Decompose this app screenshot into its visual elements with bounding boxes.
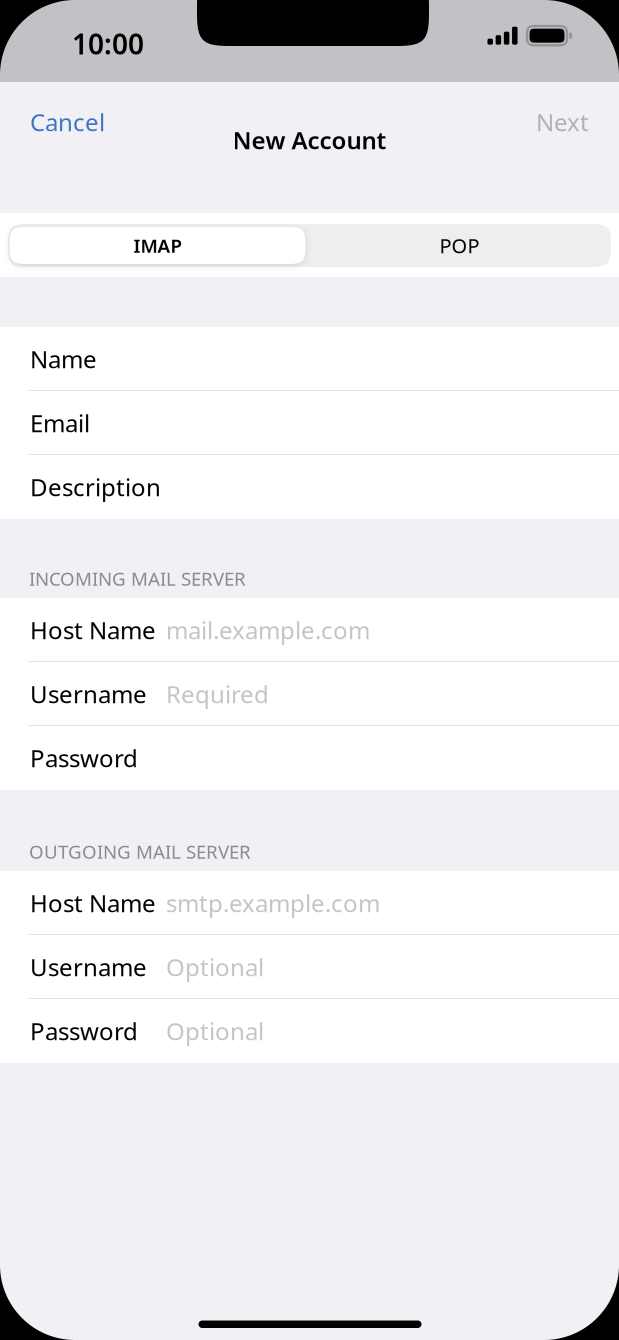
- staticText: Optional: [166, 951, 264, 983]
- button[interactable]: Host Name: [0, 871, 619, 935]
- staticText: Description: [30, 471, 161, 503]
- staticText: Host Name: [30, 887, 156, 919]
- button[interactable]: Email: [0, 391, 619, 455]
- staticText: POP: [439, 232, 479, 259]
- staticText: Name: [30, 343, 97, 375]
- button[interactable]: Password: [0, 726, 619, 790]
- button[interactable]: IMAP: [0, 213, 296, 256]
- staticText: New Account: [232, 124, 386, 156]
- button[interactable]: Username: [0, 662, 619, 726]
- button[interactable]: Password: [0, 999, 619, 1063]
- staticText: Password: [30, 742, 138, 774]
- staticText: Required: [166, 678, 269, 710]
- staticText: IMAP: [133, 233, 181, 258]
- staticText: Next: [536, 106, 589, 138]
- staticText: Password: [30, 1015, 138, 1047]
- staticText: OUTGOING MAIL SERVER: [29, 839, 251, 864]
- staticText: Email: [30, 407, 90, 439]
- staticText: Cancel: [30, 106, 105, 138]
- button[interactable]: Name: [0, 327, 619, 391]
- staticText: Username: [30, 951, 147, 983]
- button[interactable]: Cancel: [0, 82, 110, 126]
- button[interactable]: Host Name: [0, 598, 619, 662]
- button[interactable]: Description: [0, 455, 619, 519]
- staticText: Username: [30, 678, 147, 710]
- staticText: Host Name: [30, 614, 156, 646]
- staticText: INCOMING MAIL SERVER: [29, 566, 246, 591]
- staticText: 10:00: [72, 25, 144, 62]
- staticText: smtp.example.com: [166, 887, 380, 919]
- button[interactable]: POP: [0, 213, 303, 256]
- button[interactable]: Username: [0, 935, 619, 999]
- button[interactable]: Next: [0, 82, 110, 126]
- staticText: Optional: [166, 1015, 264, 1047]
- staticText: mail.example.com: [166, 614, 370, 646]
